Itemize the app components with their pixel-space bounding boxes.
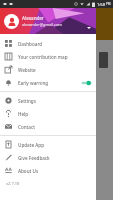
button[interactable]: About Us [0,164,96,177]
button[interactable]: Contact [0,120,96,133]
button[interactable]: Settings [0,94,96,107]
staticText: Dashboard [18,41,92,47]
button[interactable]: Early warning [0,76,96,89]
staticText: 1:58 [97,2,105,7]
staticText: Settings [18,98,92,104]
button[interactable]: Give Feedback [0,151,96,164]
button[interactable]: Website [0,63,96,76]
staticText: Website [18,67,92,73]
button[interactable]: Your contribution map [0,50,96,63]
staticText: PM [106,2,111,6]
button[interactable]: Alexander [0,8,96,34]
staticText: Update App [18,142,92,148]
staticText: Contact [18,124,92,130]
staticText: Early warning [18,80,81,86]
staticText: Help [18,111,92,117]
staticText: alexander@gmail.com [22,22,62,27]
button[interactable]: Update App [0,138,96,151]
staticText: Your contribution map [18,54,92,60]
staticText: Alexander [22,15,44,21]
button[interactable]: Switch account [86,25,92,31]
button[interactable]: Dashboard [0,37,96,50]
staticText: About Us [18,168,92,174]
staticText: Give Feedback [18,155,92,161]
button[interactable]: Early warning toggle [81,80,92,86]
button[interactable]: Help [0,107,96,120]
staticText: v2.7.18 [6,181,20,186]
